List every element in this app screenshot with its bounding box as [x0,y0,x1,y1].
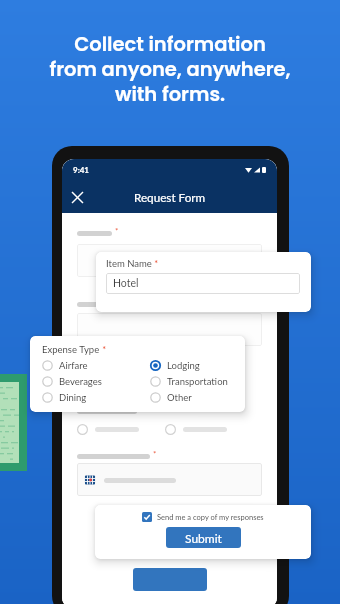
button[interactable]: Airfare [42,357,88,373]
staticText: Item Name [106,258,152,269]
staticText: Other [167,392,192,403]
staticText: Request Form [134,190,206,204]
staticText: Beverages [59,376,102,387]
staticText: * [115,226,119,236]
staticText: Lodging [167,360,200,371]
staticText: Hotel [113,277,139,290]
button[interactable]: Lodging [150,357,200,373]
staticText: Transportation [167,376,228,387]
button[interactable]: Beverages [42,373,102,389]
button[interactable]: Send me a copy of my responses [142,512,264,522]
button[interactable]: Other [150,389,192,405]
staticText: Send me a copy of my responses [157,513,264,522]
button[interactable]: Submit [166,527,241,548]
staticText: * [152,258,159,269]
staticText: * [153,449,157,459]
button[interactable]: Dining [42,389,87,405]
button[interactable]: Transportation [150,373,228,389]
staticText: Expense Type [42,344,100,355]
button[interactable] [133,568,207,591]
staticText: * [140,404,144,414]
button[interactable]: Close [65,185,89,209]
staticText: Dining [59,392,87,403]
staticText: Submit [185,531,222,545]
staticText: Collect information from anyone, anywher… [49,31,291,108]
staticText: * [100,344,107,355]
staticText: Airfare [59,360,88,371]
staticText: 9:41 [73,165,89,175]
